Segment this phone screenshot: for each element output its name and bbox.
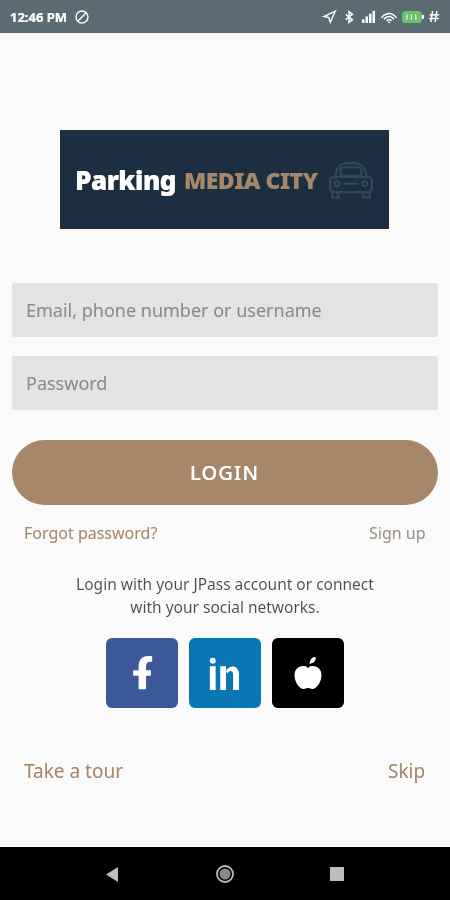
button[interactable]: Forgot password? <box>24 522 158 544</box>
button[interactable]: Sign in with Apple <box>272 638 344 708</box>
button[interactable]: Sign in with Facebook <box>106 638 178 708</box>
staticText: Email, phone number or username <box>26 298 322 323</box>
button[interactable]: Sign up <box>369 522 426 544</box>
button[interactable]: Recent apps <box>314 851 360 897</box>
button[interactable]: Home <box>202 851 248 897</box>
button[interactable]: Skip <box>388 758 426 784</box>
button[interactable]: Back <box>90 851 136 897</box>
button[interactable]: Take a tour <box>24 758 124 784</box>
button[interactable]: Email, phone number or username <box>12 283 438 337</box>
staticText: Sign up <box>369 522 426 544</box>
staticText: Take a tour <box>24 758 124 784</box>
staticText: LOGIN <box>190 459 260 486</box>
staticText: Password <box>26 371 108 396</box>
staticText: Forgot password? <box>24 522 158 544</box>
staticText: Login with your JPass account or connect… <box>20 573 430 618</box>
staticText: 12:46 PM <box>10 8 68 26</box>
staticText: Skip <box>388 758 426 784</box>
button[interactable]: Sign in with LinkedIn <box>189 638 261 708</box>
button[interactable]: Password <box>12 356 438 410</box>
staticText: MEDIA CITY <box>184 164 318 195</box>
staticText: Parking <box>75 162 177 197</box>
button[interactable]: LOGIN <box>12 440 438 505</box>
